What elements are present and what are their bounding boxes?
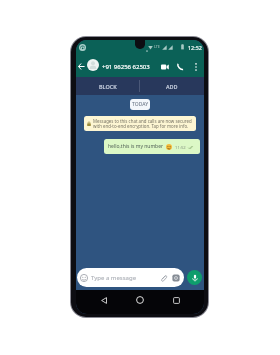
- button[interactable]: Call: [174, 60, 187, 73]
- staticText: Type a message: [91, 274, 137, 282]
- staticText: hello,this is my number: [108, 143, 164, 150]
- button[interactable]: Voice message: [187, 270, 202, 285]
- staticText: +91 96256 62503: [102, 63, 150, 71]
- button[interactable]: Video call: [158, 60, 171, 73]
- staticText: 12:52: [188, 44, 202, 51]
- button[interactable]: Messages to this chat and calls are now …: [84, 116, 196, 131]
- button[interactable]: More options: [190, 60, 201, 73]
- staticText: BLOCK: [99, 83, 117, 90]
- staticText: ADD: [166, 83, 178, 90]
- button[interactable]: Attach: [160, 274, 167, 282]
- button[interactable]: BLOCK: [76, 77, 139, 95]
- button[interactable]: Camera: [172, 274, 180, 282]
- staticText: TODAY: [132, 101, 149, 108]
- button[interactable]: Back: [76, 60, 87, 73]
- button[interactable]: Home: [131, 288, 149, 312]
- button[interactable]: Contact photo: [87, 59, 99, 71]
- staticText: 11:52: [175, 145, 186, 151]
- button[interactable]: Recents: [167, 288, 185, 312]
- button[interactable]: ADD: [140, 77, 204, 95]
- button[interactable]: Back: [95, 288, 113, 312]
- staticText: LTE: [154, 44, 160, 49]
- button[interactable]: Type a message: [77, 268, 184, 287]
- staticText: Messages to this chat and calls are now …: [93, 118, 193, 130]
- button[interactable]: hello,this is my number: [104, 139, 200, 154]
